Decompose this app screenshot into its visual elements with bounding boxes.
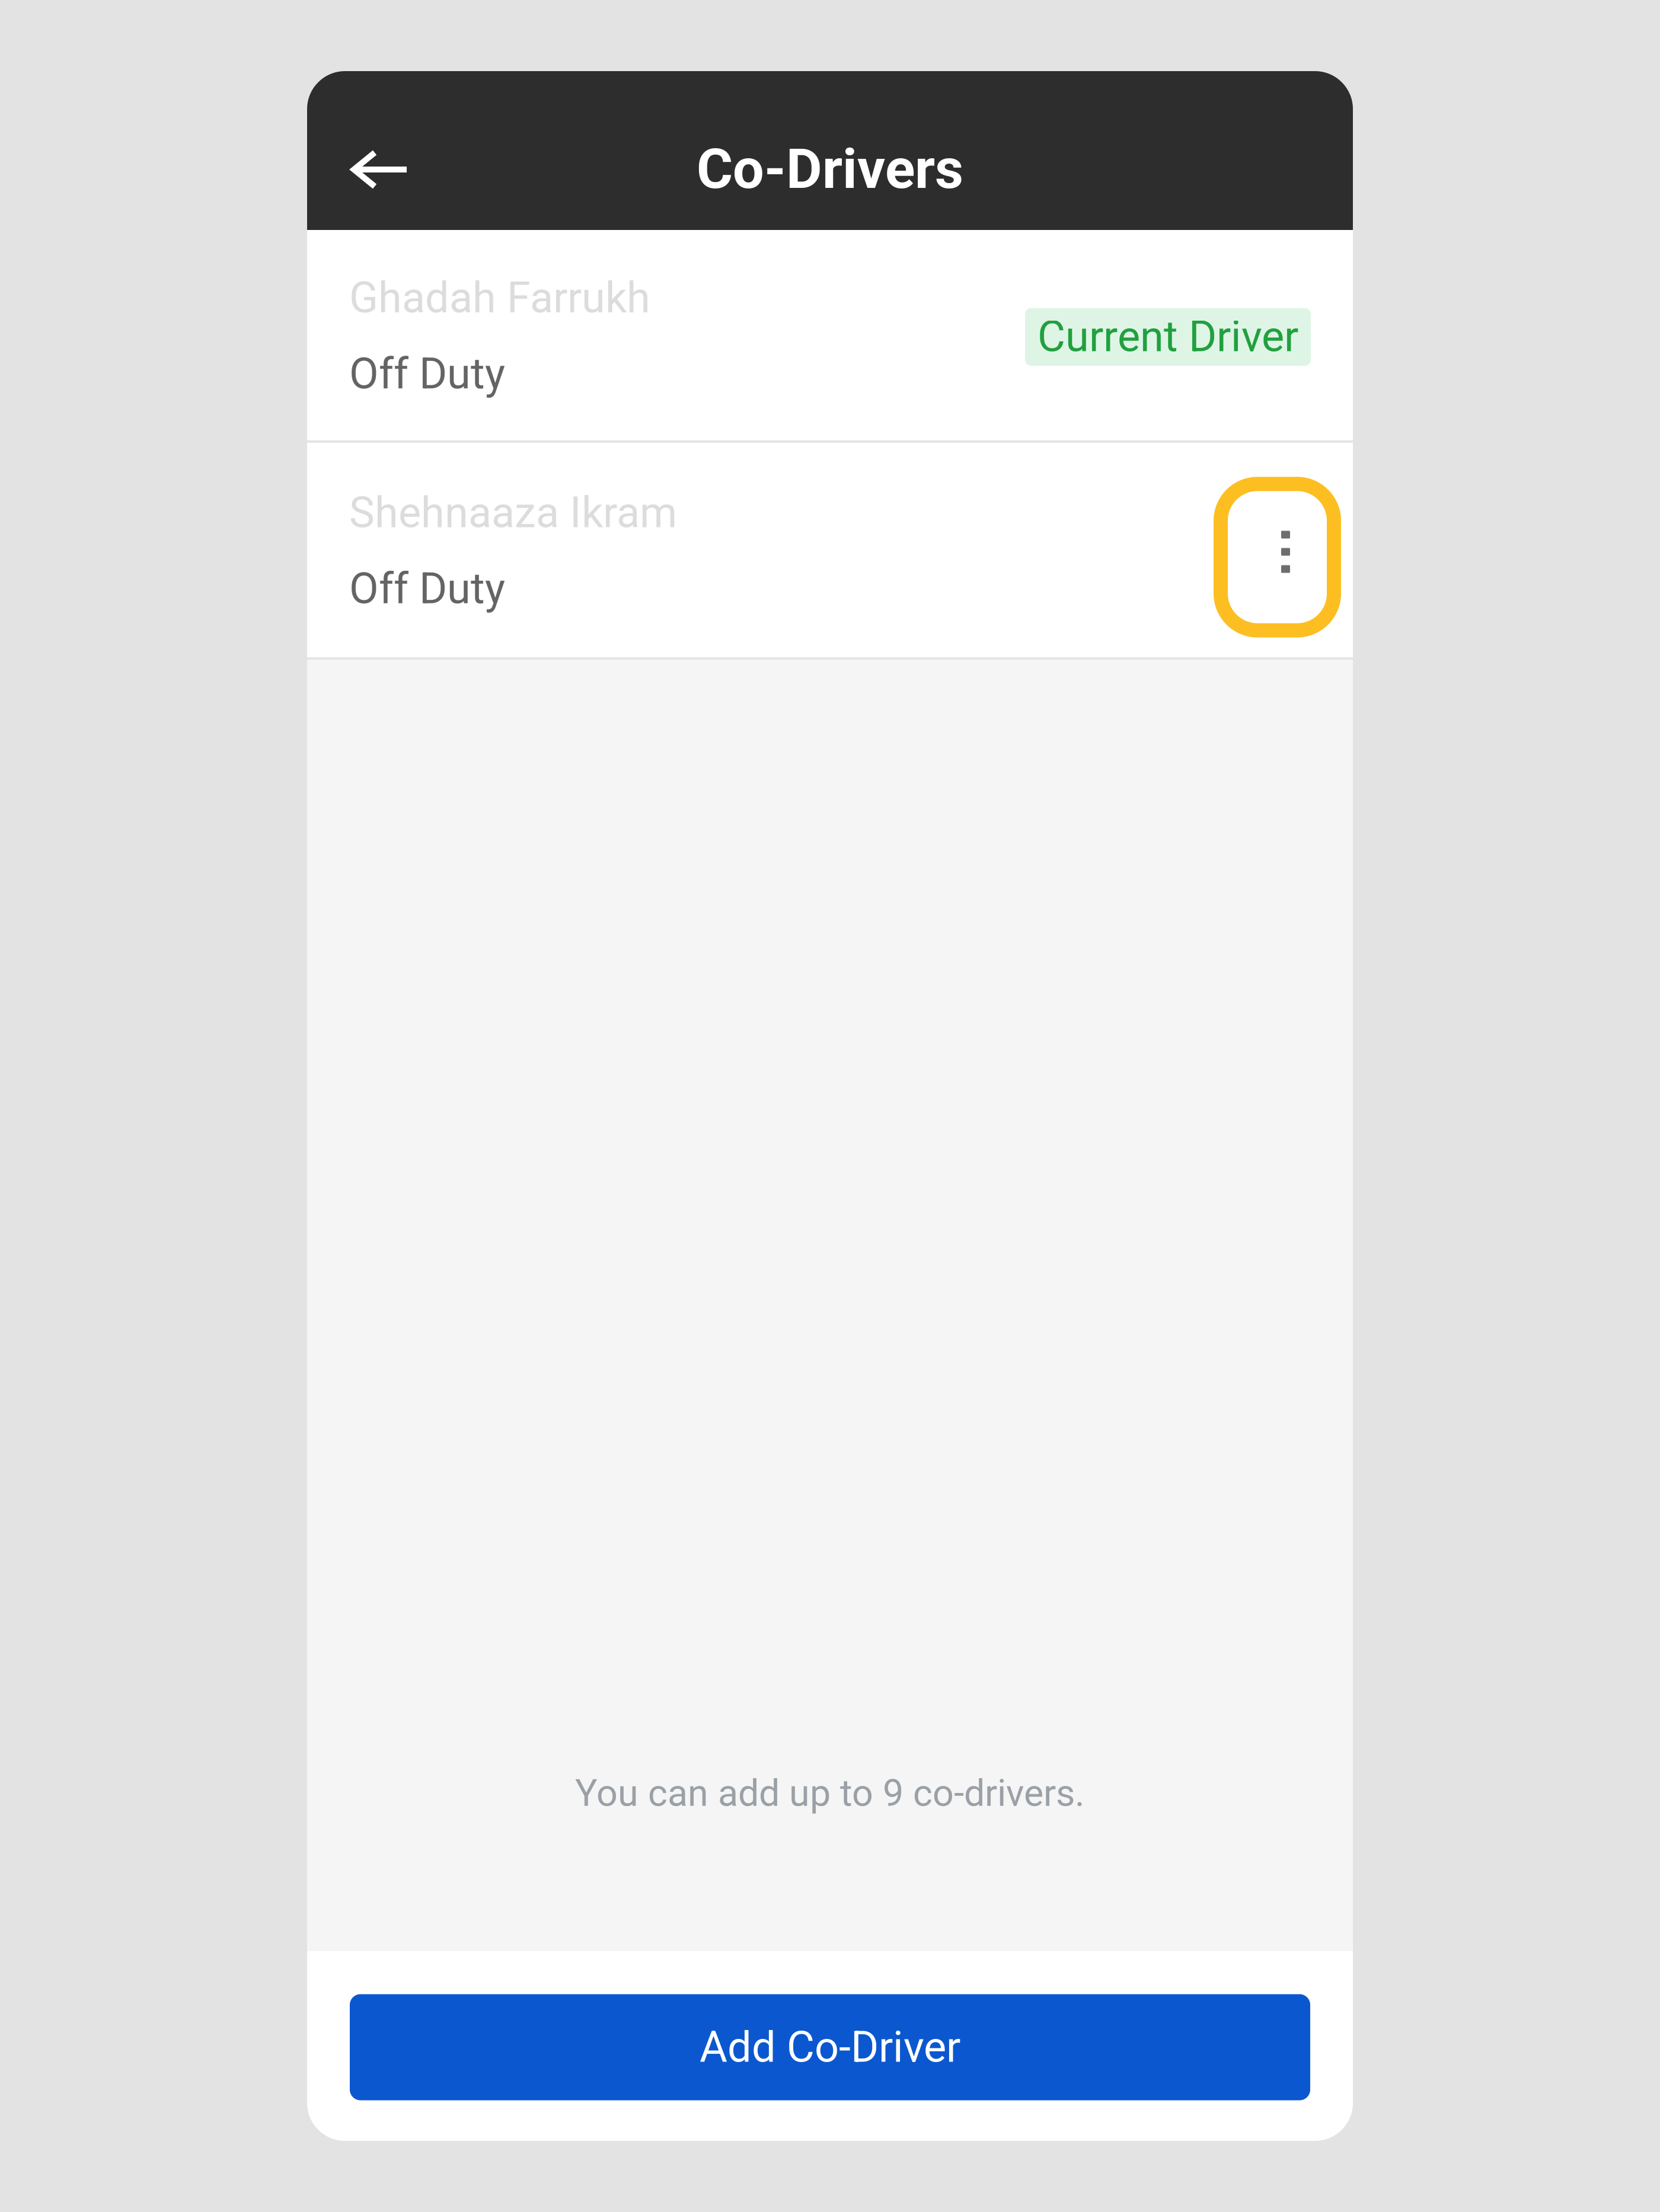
button[interactable]: Back	[307, 135, 426, 202]
staticText: Current Driver	[1037, 312, 1298, 362]
staticText: You can add up to 9 co-drivers.	[575, 1771, 1085, 1815]
staticText: Off Duty	[349, 349, 505, 399]
button[interactable]: Add Co-Driver	[350, 1992, 1310, 2100]
button[interactable]: More options	[1214, 463, 1311, 637]
staticText: Co-Drivers	[697, 137, 963, 201]
staticText: Shehnaaza Ikram	[349, 488, 677, 538]
staticText: Off Duty	[349, 564, 505, 614]
staticText: Ghadah Farrukh	[349, 273, 650, 323]
staticText: Add Co-Driver	[700, 2022, 960, 2072]
